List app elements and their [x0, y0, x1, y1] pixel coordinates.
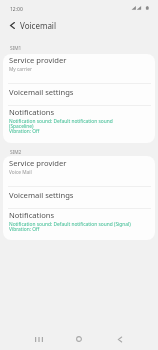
staticText: Voicemail settings — [9, 87, 74, 97]
button[interactable]: Home — [65, 327, 93, 350]
staticText: Notification sound: Default notification… — [9, 118, 113, 135]
button[interactable]: Back — [4, 17, 20, 33]
staticText: Notifications — [9, 107, 55, 117]
button[interactable]: Recent apps — [25, 327, 53, 350]
button[interactable]: Service provider — [3, 54, 155, 83]
staticText: My carrier — [9, 66, 32, 73]
staticText: SIM1 — [10, 45, 22, 52]
other: Signal and battery — [131, 6, 149, 11]
staticText: Voicemail settings — [9, 190, 74, 200]
staticText: Voicemail — [20, 20, 56, 31]
button[interactable]: Back — [106, 327, 134, 350]
button[interactable]: Notifications — [3, 209, 155, 240]
staticText: Notification sound: Default notification… — [9, 221, 131, 233]
staticText: Notifications — [9, 210, 55, 220]
staticText: Voice Mail — [9, 169, 32, 176]
staticText: Service provider — [9, 158, 67, 168]
button[interactable]: Service provider — [3, 156, 155, 186]
button[interactable]: Notifications — [3, 106, 155, 143]
staticText: 12:00 — [10, 6, 23, 13]
staticText: SIM2 — [10, 149, 22, 156]
staticText: Service provider — [9, 55, 67, 65]
button[interactable]: Voicemail settings — [3, 84, 155, 105]
button[interactable]: Voicemail settings — [3, 187, 155, 208]
